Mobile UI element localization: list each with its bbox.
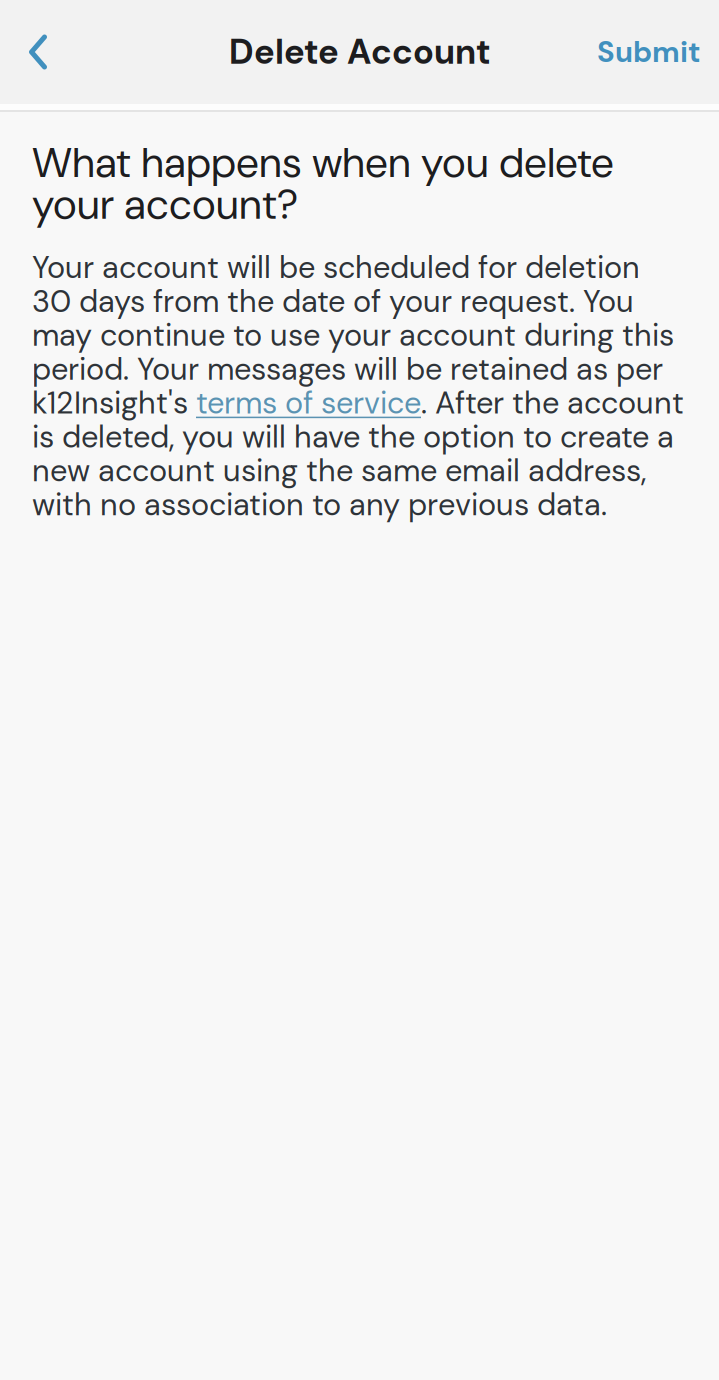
staticText: Delete Account bbox=[229, 29, 490, 74]
button[interactable]: Back bbox=[0, 0, 76, 104]
staticText: Your account will be scheduled for delet… bbox=[32, 248, 684, 525]
staticText: What happens when you delete your accoun… bbox=[32, 136, 614, 232]
staticText: Submit bbox=[597, 33, 701, 71]
button[interactable]: Submit bbox=[579, 0, 719, 104]
